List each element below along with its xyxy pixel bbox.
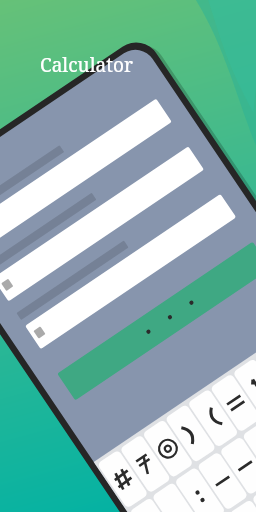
other: Calculator app preview — [0, 0, 256, 512]
staticText: Calculator — [40, 52, 133, 78]
button[interactable]: Calculator — [40, 52, 133, 78]
